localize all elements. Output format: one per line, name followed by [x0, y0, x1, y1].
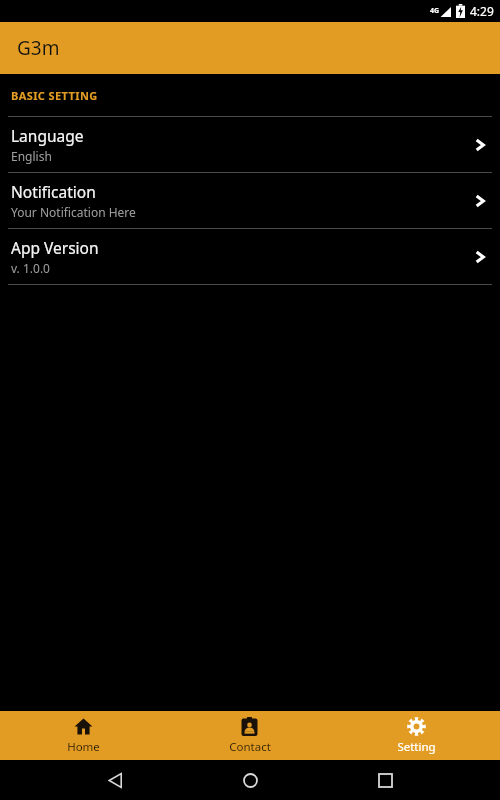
staticText: English: [11, 148, 52, 164]
staticText: G3m: [17, 35, 60, 61]
staticText: v. 1.0.0: [11, 260, 50, 276]
button[interactable]: Home: [0, 711, 166, 760]
staticText: Language: [11, 125, 84, 146]
button[interactable]: Back: [95, 760, 135, 800]
button[interactable]: Language: [0, 117, 500, 172]
button[interactable]: App Version: [0, 229, 500, 284]
button[interactable]: Recent apps: [365, 760, 405, 800]
staticText: App Version: [11, 237, 99, 258]
staticText: 4G: [430, 6, 440, 16]
staticText: Your Notification Here: [11, 204, 136, 220]
button[interactable]: Contact: [166, 711, 333, 760]
staticText: Contact: [229, 739, 271, 755]
button[interactable]: Home: [230, 760, 270, 800]
button[interactable]: Notification: [0, 173, 500, 228]
staticText: Notification: [11, 181, 96, 202]
staticText: Setting: [397, 739, 436, 755]
button[interactable]: Setting: [333, 711, 500, 760]
staticText: BASIC SETTING: [11, 88, 98, 103]
staticText: 4:29: [470, 3, 494, 19]
staticText: Home: [67, 739, 100, 755]
